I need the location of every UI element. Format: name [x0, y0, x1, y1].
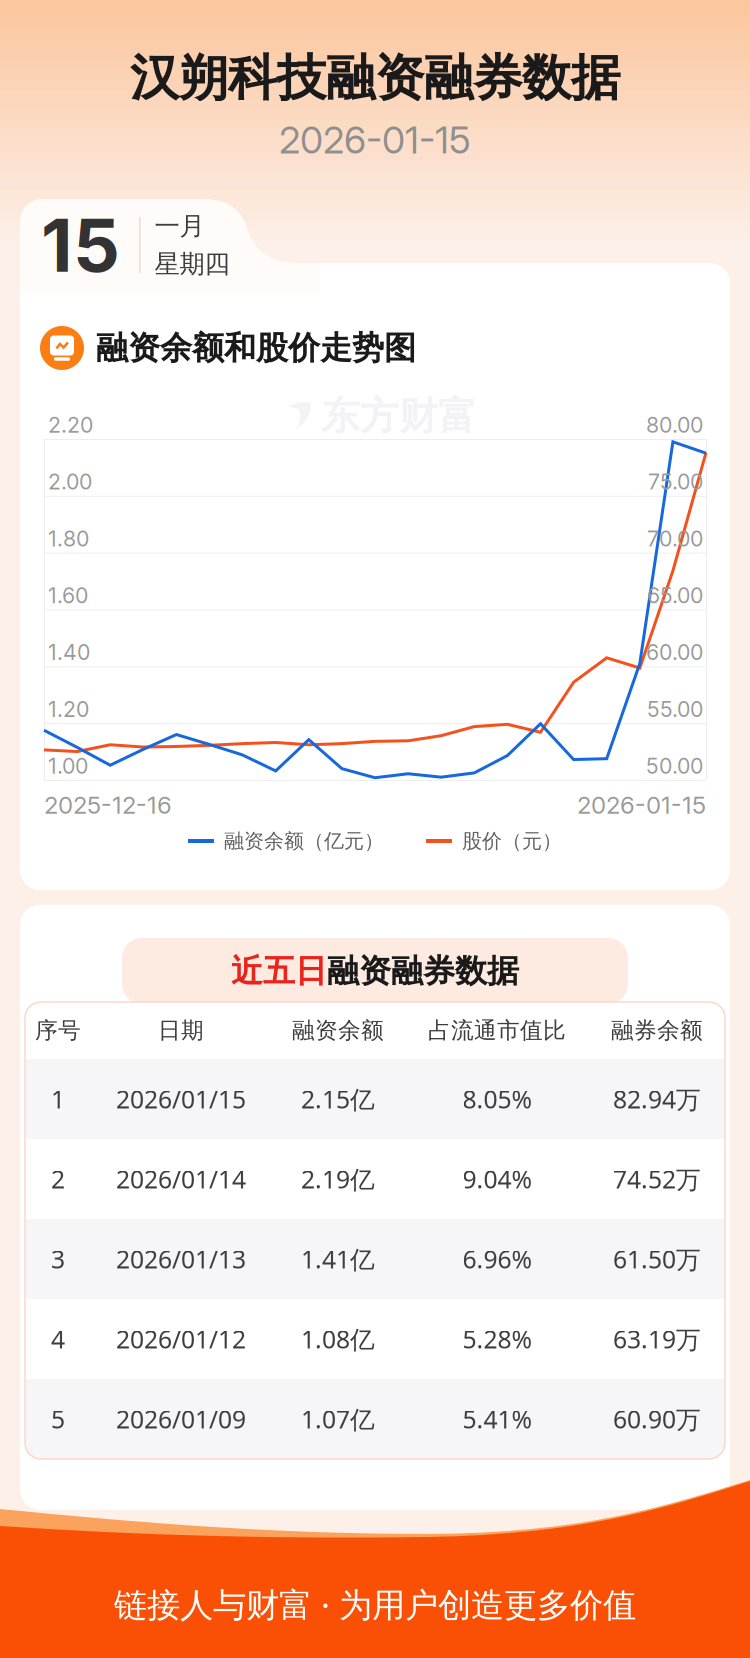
staticText: 1.00 [48, 753, 88, 779]
staticText: 2.00 [48, 469, 92, 495]
staticText: 2.15亿 [301, 1082, 375, 1116]
staticText: 占流通市值比 [428, 1016, 566, 1045]
staticText: 融资余额 [292, 1016, 384, 1045]
staticText: 一月 [154, 210, 204, 242]
staticText: 2026/01/14 [116, 1162, 246, 1196]
staticText: 63.19万 [613, 1322, 701, 1356]
staticText: 50.00 [646, 753, 703, 779]
staticText: 65.00 [647, 583, 703, 608]
staticText: 融资余额和股价走势图 [96, 328, 416, 368]
staticText: 1.08亿 [301, 1322, 375, 1356]
staticText: 1.60 [48, 583, 88, 608]
staticText: 1.41亿 [301, 1242, 375, 1276]
staticText: 汉朔科技融资融券数据 [130, 47, 620, 109]
staticText: 近五日 [231, 951, 327, 991]
staticText: 股价（元） [462, 828, 562, 854]
staticText: 序号 [35, 1016, 81, 1045]
staticText: 70.00 [647, 526, 703, 552]
staticText: 2026/01/13 [116, 1242, 246, 1276]
staticText: 星期四 [154, 248, 229, 280]
staticText: 60.90万 [613, 1402, 701, 1436]
staticText: 5.28% [462, 1322, 531, 1356]
staticText: 1.40 [48, 639, 90, 665]
staticText: 61.50万 [613, 1242, 701, 1276]
staticText: 80.00 [646, 412, 703, 438]
staticText: 55.00 [647, 696, 703, 722]
staticText: 60.00 [646, 639, 703, 665]
staticText: 8.05% [462, 1082, 531, 1116]
staticText: 9.04% [462, 1162, 531, 1196]
staticText: 2026-01-15 [279, 117, 471, 163]
staticText: 2025-12-16 [44, 790, 172, 819]
staticText: 融资融券数据 [327, 951, 519, 991]
staticText: 15 [41, 201, 120, 289]
staticText: 3 [51, 1242, 65, 1276]
staticText: 2026/01/09 [116, 1402, 246, 1436]
staticText: 2026/01/15 [116, 1082, 246, 1116]
staticText: 4 [51, 1322, 65, 1356]
staticText: 1.80 [48, 526, 89, 552]
staticText: 2.20 [48, 412, 93, 438]
staticText: 6.96% [462, 1242, 531, 1276]
staticText: 82.94万 [613, 1082, 701, 1116]
staticText: 2.19亿 [301, 1162, 375, 1196]
staticText: 74.52万 [613, 1162, 701, 1196]
staticText: 2026/01/12 [116, 1322, 246, 1356]
staticText: 2 [51, 1162, 65, 1196]
staticText: 融资余额（亿元） [224, 828, 384, 854]
staticText: 链接人与财富 · 为用户创造更多价值 [114, 1581, 636, 1627]
button[interactable]: 融资余额和股价走势图 [40, 326, 450, 370]
staticText: 75.00 [648, 469, 703, 495]
staticText: 1.07亿 [301, 1402, 375, 1436]
staticText: 东方财富 [321, 392, 477, 440]
staticText: 5 [51, 1402, 65, 1436]
staticText: 融券余额 [611, 1016, 703, 1045]
staticText: 2026-01-15 [577, 790, 706, 819]
staticText: 1.20 [48, 696, 89, 722]
staticText: 日期 [158, 1016, 204, 1045]
staticText: 1 [51, 1082, 65, 1116]
staticText: 5.41% [462, 1402, 531, 1436]
